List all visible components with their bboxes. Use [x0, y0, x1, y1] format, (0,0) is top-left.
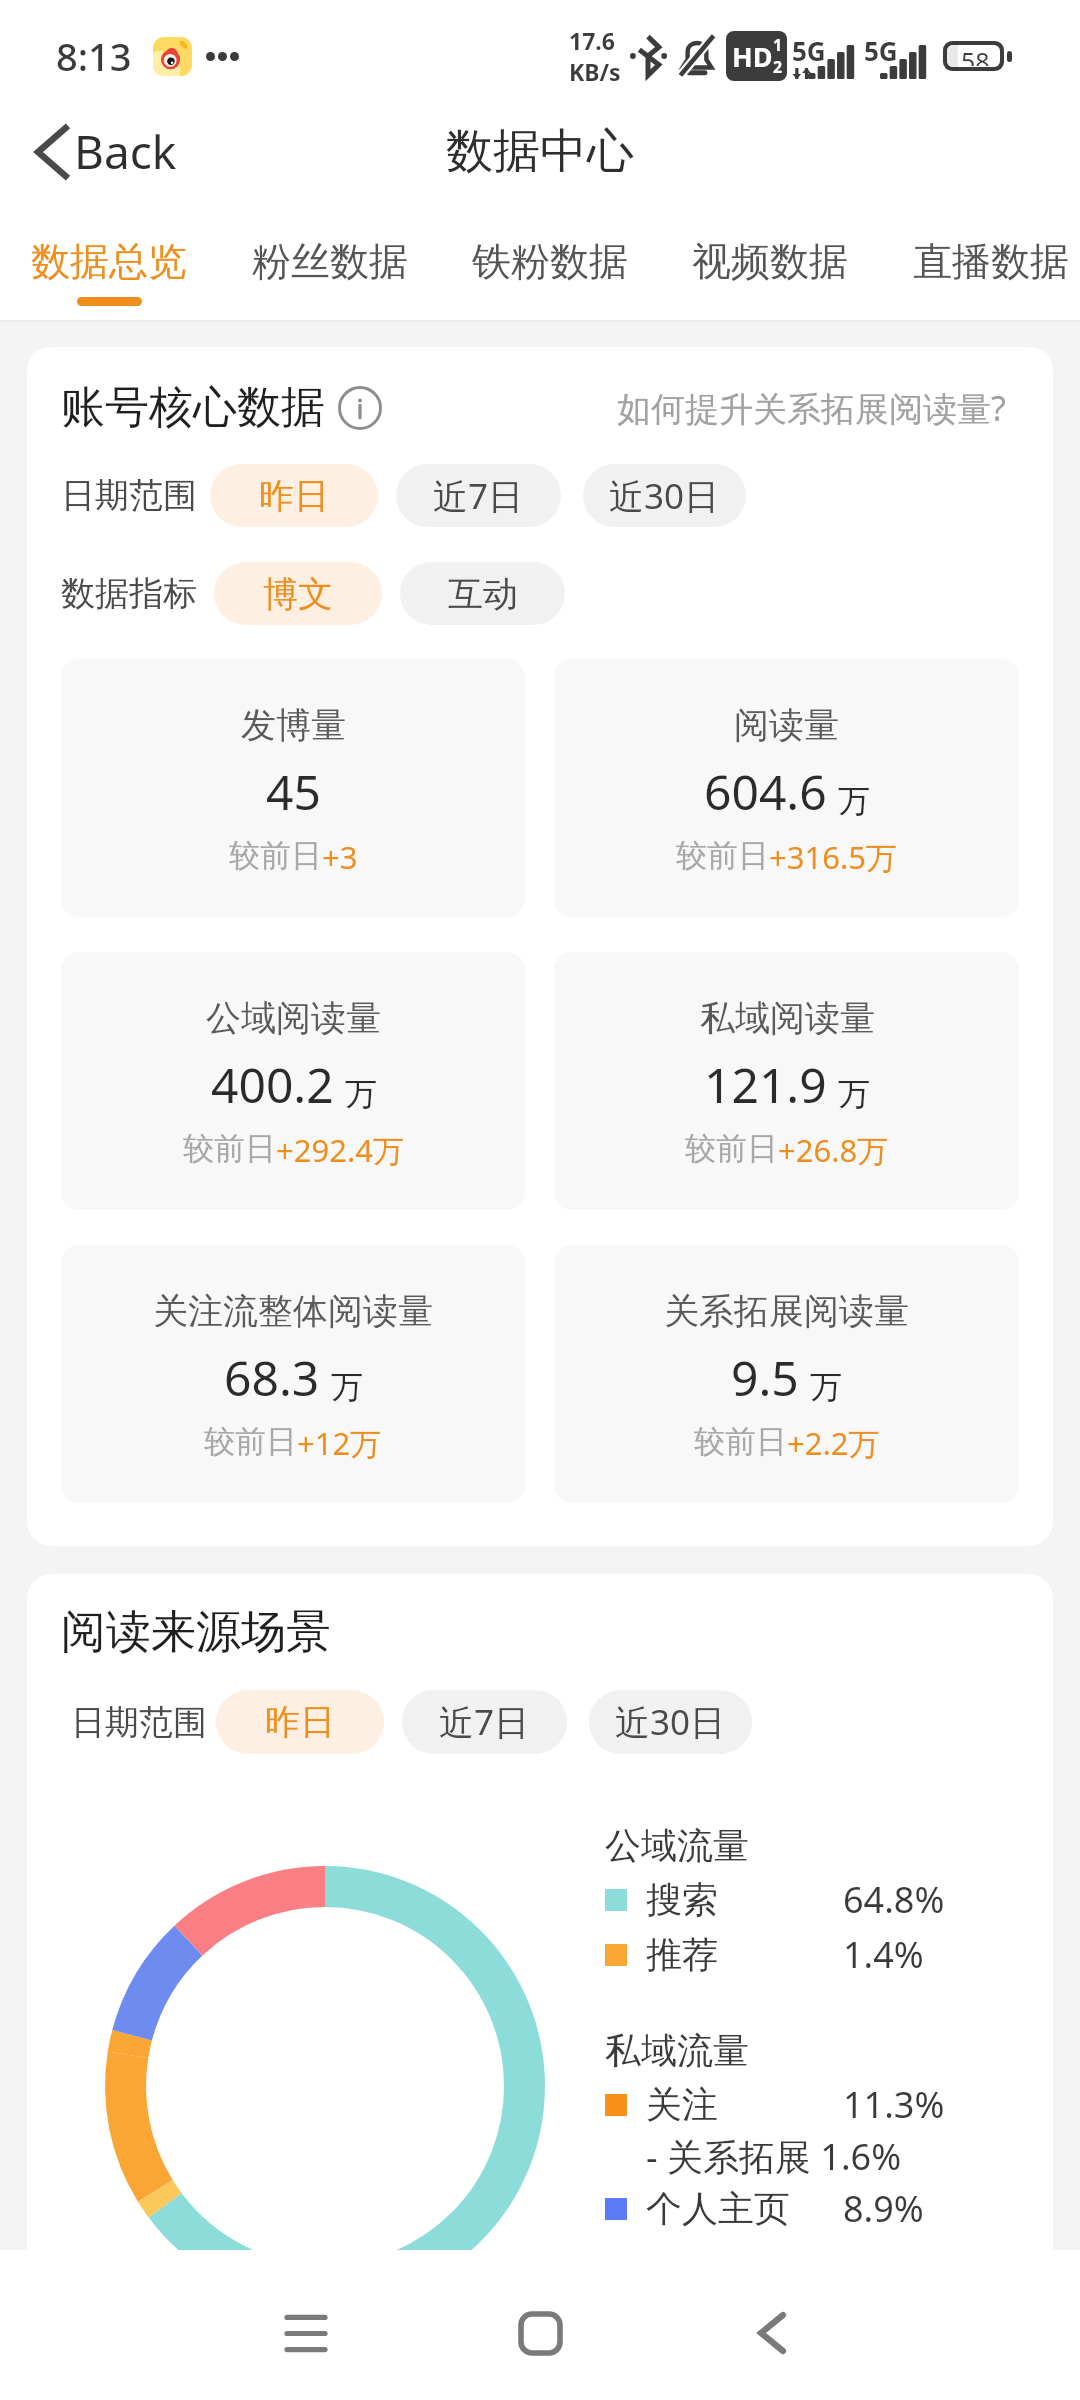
staticText: 互动	[448, 572, 518, 616]
staticText: 私域流量	[605, 2028, 749, 2073]
staticText: 阅读量	[734, 703, 839, 747]
staticText: 较前日	[676, 836, 769, 875]
staticText: +26.8万	[778, 1129, 889, 1171]
button[interactable]: 搜索	[605, 1872, 1053, 1927]
staticText: 万	[838, 781, 870, 821]
staticText: 数据中心	[446, 122, 634, 181]
staticText: 近30日	[615, 1698, 726, 1746]
staticText: 58	[961, 45, 990, 66]
staticText: 5G	[792, 33, 826, 68]
staticText: 推荐	[646, 1932, 718, 1977]
staticText: 公域阅读量	[206, 996, 381, 1040]
button[interactable]: 关注流整体阅读量	[61, 1245, 525, 1503]
staticText: 5G	[864, 33, 898, 68]
button[interactable]: 昨日	[210, 464, 378, 527]
button[interactable]: 关系拓展阅读量	[554, 1245, 1019, 1503]
staticText: - 关系拓展 1.6%	[646, 2132, 902, 2181]
staticText: +12万	[297, 1422, 382, 1464]
staticText: 较前日	[183, 1129, 276, 1168]
staticText: 较前日	[229, 836, 322, 875]
button[interactable]: 阅读量	[554, 659, 1019, 917]
button[interactable]: 发博量	[61, 659, 525, 917]
button[interactable]: 直播数据	[886, 202, 1080, 320]
staticText: 较前日	[204, 1422, 297, 1461]
staticText: 较前日	[694, 1422, 787, 1461]
button[interactable]: Home	[470, 2263, 610, 2400]
staticText: 近30日	[609, 472, 720, 520]
staticText: 近7日	[439, 1698, 530, 1746]
button[interactable]: Back	[0, 108, 201, 195]
staticText: 45	[266, 759, 321, 824]
button[interactable]: 私域阅读量	[554, 952, 1019, 1210]
button[interactable]: - 关系拓展 1.6%	[605, 2131, 1053, 2182]
staticText: 11.3%	[843, 2080, 945, 2129]
staticText: 1.4%	[843, 1930, 924, 1979]
staticText: 8.9%	[843, 2184, 924, 2233]
staticText: 发博量	[241, 703, 346, 747]
staticText: 阅读来源场景	[61, 1604, 331, 1661]
button[interactable]: 近7日	[396, 464, 561, 527]
staticText: 搜索	[646, 1877, 718, 1922]
staticText: 68.3	[224, 1345, 320, 1410]
staticText: 公域流量	[605, 1823, 749, 1868]
staticText: +316.5万	[769, 836, 897, 878]
staticText: 604.6	[704, 759, 827, 824]
staticText: 较前日	[685, 1129, 778, 1168]
staticText: 昨日	[265, 1700, 335, 1744]
button[interactable]: 互动	[400, 562, 565, 625]
staticText: 视频数据	[692, 237, 848, 286]
staticText: +292.4万	[276, 1129, 404, 1171]
staticText: 万	[345, 1074, 377, 1114]
staticText: 个人主页	[646, 2186, 790, 2231]
staticText: 121.9	[704, 1052, 827, 1117]
button[interactable]: Back	[702, 2263, 842, 2400]
button[interactable]: 粉丝数据	[225, 202, 435, 320]
staticText: 关注流整体阅读量	[153, 1289, 433, 1333]
button[interactable]: 铁粉数据	[445, 202, 655, 320]
staticText: 万	[838, 1074, 870, 1114]
staticText: 2	[773, 56, 783, 78]
button[interactable]: 推荐	[605, 1927, 1053, 1982]
staticText: +3	[322, 836, 358, 878]
staticText: 博文	[263, 572, 333, 616]
button[interactable]: 近30日	[589, 1690, 752, 1754]
button[interactable]: 公域阅读量	[61, 952, 525, 1210]
button[interactable]: 数据总览	[4, 202, 214, 320]
button[interactable]: 近7日	[402, 1690, 567, 1754]
staticText: 8:13	[56, 30, 132, 82]
staticText: 17.6	[569, 25, 615, 56]
staticText: 日期范围	[71, 1701, 207, 1744]
staticText: +2.2万	[787, 1422, 880, 1464]
button[interactable]: 博文	[214, 562, 382, 625]
button[interactable]: 关注	[605, 2078, 1053, 2131]
button[interactable]: Recents	[236, 2263, 376, 2400]
staticText: 数据指标	[61, 572, 197, 615]
button[interactable]: 个人主页	[605, 2182, 1053, 2235]
staticText: 粉丝数据	[252, 237, 408, 286]
button[interactable]: 如何提升关系拓展阅读量?	[617, 385, 1019, 431]
staticText: 日期范围	[61, 474, 197, 517]
staticText: 1	[773, 34, 783, 56]
staticText: 万	[331, 1367, 363, 1407]
staticText: Back	[74, 120, 177, 183]
staticText: 账号核心数据	[61, 380, 325, 435]
staticText: KB/s	[569, 56, 621, 87]
staticText: 私域阅读量	[700, 996, 875, 1040]
button[interactable]: 视频数据	[665, 202, 875, 320]
staticText: 关系拓展阅读量	[664, 1289, 909, 1333]
staticText: 400.2	[211, 1052, 334, 1117]
staticText: 昨日	[259, 474, 329, 518]
staticText: 数据总览	[31, 237, 187, 286]
staticText: 近7日	[433, 472, 524, 520]
button[interactable]: 昨日	[216, 1690, 384, 1754]
staticText: 9.5	[731, 1345, 799, 1410]
staticText: 64.8%	[843, 1875, 945, 1924]
button[interactable]: Info	[338, 386, 382, 430]
staticText: 关注	[646, 2082, 718, 2127]
staticText: 铁粉数据	[472, 237, 628, 286]
staticText: HD	[732, 38, 773, 75]
staticText: 直播数据	[913, 237, 1069, 286]
staticText: 万	[810, 1367, 842, 1407]
button[interactable]: 近30日	[583, 464, 746, 527]
